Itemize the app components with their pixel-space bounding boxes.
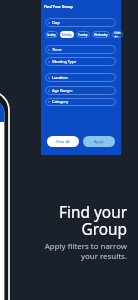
staticText: Age Range: <box>52 88 73 94</box>
staticText: Meeting Type <box>52 59 77 65</box>
staticText: Sunday <box>47 33 56 37</box>
button[interactable]: Apply <box>83 136 115 147</box>
staticText: Thursday <box>114 31 121 38</box>
staticText: Category <box>52 99 69 105</box>
staticText: Apply <box>94 139 104 144</box>
button[interactable]: Thursday <box>112 31 123 38</box>
staticText: Clear All <box>56 139 70 144</box>
staticText: Tuesday <box>78 33 88 37</box>
staticText: Location: <box>52 75 69 81</box>
button[interactable]: Location: <box>45 73 116 82</box>
button[interactable]: Meeting Type <box>45 57 116 66</box>
staticText: Time: <box>52 47 62 53</box>
button[interactable]: Age Range: <box>45 86 116 95</box>
button[interactable]: Time: <box>45 45 116 54</box>
button[interactable]: Clear All <box>47 136 79 147</box>
staticText: your results. <box>81 251 127 262</box>
staticText: Find Your Group <box>44 4 73 9</box>
button[interactable]: Tuesday <box>76 31 90 38</box>
button[interactable]: Sunday <box>45 31 58 38</box>
staticText: Monday <box>62 33 72 37</box>
staticText: Wednesday <box>94 33 108 37</box>
button[interactable]: Monday <box>60 31 74 38</box>
staticText: Find your Group <box>59 202 127 240</box>
staticText: Apply filters to narrow <box>44 241 127 252</box>
button[interactable]: Wednesday <box>92 31 110 38</box>
button[interactable]: Day: <box>45 18 116 27</box>
staticText: Day: <box>52 20 60 26</box>
button[interactable]: Category <box>45 98 116 106</box>
